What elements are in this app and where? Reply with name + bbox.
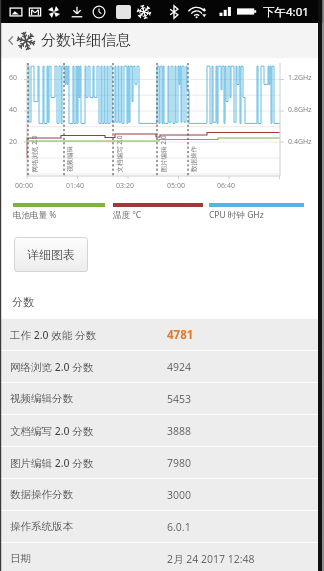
staticText: 文档编写 2.0: [114, 135, 123, 172]
staticText: CPU 时钟 GHz: [209, 209, 264, 221]
button[interactable]: 视频编辑分数: [0, 382, 324, 414]
staticText: 分数详细信息: [41, 31, 131, 50]
button[interactable]: 网络浏览 2.0 分数: [0, 350, 324, 382]
staticText: 03:20: [116, 181, 134, 191]
staticText: 视频编辑: [66, 146, 74, 172]
staticText: 4924: [167, 360, 192, 374]
staticText: 分数: [12, 295, 34, 309]
button[interactable]: 数据操作分数: [0, 478, 324, 510]
button[interactable]: 文档编写 2.0 分数: [0, 414, 324, 446]
staticText: 01:40: [66, 181, 84, 191]
staticText: 数据操作分数: [10, 488, 73, 501]
button[interactable]: 详细图表: [14, 237, 88, 272]
staticText: 00:00: [15, 181, 33, 191]
staticText: 3888: [167, 424, 192, 438]
staticText: 20: [9, 137, 18, 147]
staticText: 操作系统版本: [10, 520, 73, 533]
button[interactable]: 日期: [0, 542, 324, 571]
staticText: 0.4GHz: [288, 137, 312, 147]
staticText: 视频编辑分数: [10, 392, 73, 405]
button[interactable]: 操作系统版本: [0, 510, 324, 542]
staticText: 1.2GHz: [288, 73, 312, 83]
staticText: 0.8GHz: [288, 105, 312, 115]
staticText: 图片编辑 2.0 分数: [10, 456, 94, 470]
button[interactable]: 图片编辑 2.0 分数: [0, 446, 324, 478]
staticText: 网络浏览 2.0: [29, 135, 38, 172]
staticText: 2月 24 2017 12:48: [167, 552, 255, 566]
staticText: 6.0.1: [167, 520, 191, 534]
staticText: 下午4:01: [263, 4, 309, 20]
staticText: 7980: [167, 456, 192, 470]
staticText: 4781: [167, 327, 194, 343]
staticText: 40: [9, 105, 18, 115]
staticText: 工作 2.0 效能 分数: [10, 328, 97, 342]
staticText: 电池电量 %: [13, 209, 57, 221]
staticText: 详细图表: [27, 247, 75, 262]
staticText: 网络浏览 2.0 分数: [10, 360, 94, 374]
button[interactable]: Back: [5, 35, 16, 46]
staticText: 5453: [167, 392, 192, 406]
staticText: 日期: [10, 552, 31, 565]
staticText: 60: [9, 73, 18, 83]
staticText: 图片编辑 2.0: [158, 135, 167, 172]
staticText: 06:40: [217, 181, 235, 191]
staticText: 数据操作: [190, 146, 198, 172]
button[interactable]: 工作 2.0 效能 分数: [0, 318, 324, 350]
staticText: 温度 °C: [113, 209, 142, 221]
staticText: 05:00: [167, 181, 185, 191]
staticText: 文档编写 2.0 分数: [10, 424, 94, 438]
staticText: 3000: [167, 488, 192, 502]
